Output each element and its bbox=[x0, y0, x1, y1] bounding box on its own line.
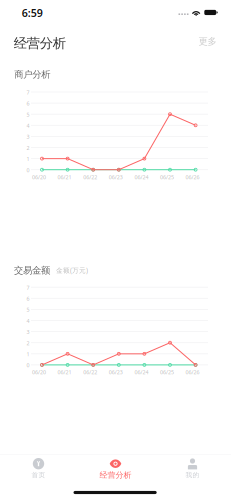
staticText: 首页 bbox=[31, 471, 45, 479]
staticText: 06/24 bbox=[134, 369, 148, 376]
staticText: 6:59 bbox=[22, 6, 43, 20]
staticText: 经营分析 bbox=[14, 35, 66, 52]
staticText: 06/22 bbox=[83, 369, 97, 376]
staticText: 06/20 bbox=[32, 174, 46, 181]
staticText: 2 bbox=[26, 340, 29, 347]
staticText: 6 bbox=[26, 295, 29, 302]
staticText: 06/26 bbox=[186, 174, 200, 181]
staticText: 1 bbox=[26, 351, 29, 358]
staticText: 06/25 bbox=[160, 369, 174, 376]
staticText: 金额(万元) bbox=[56, 266, 88, 275]
staticText: 4 bbox=[26, 317, 29, 324]
staticText: 6 bbox=[26, 100, 29, 107]
staticText: 更多 bbox=[198, 36, 216, 47]
staticText: 4 bbox=[26, 122, 29, 129]
staticText: 0 bbox=[26, 362, 29, 369]
staticText: 0 bbox=[26, 167, 29, 174]
staticText: 06/23 bbox=[109, 369, 123, 376]
staticText: 3 bbox=[26, 328, 29, 336]
staticText: 06/22 bbox=[83, 174, 97, 181]
button[interactable]: 首页 bbox=[0, 455, 77, 499]
button[interactable]: 经营分析 bbox=[77, 455, 154, 499]
staticText: 商户分析 bbox=[14, 69, 50, 80]
staticText: 我的 bbox=[185, 471, 199, 479]
staticText: 3 bbox=[26, 133, 29, 140]
staticText: 06/24 bbox=[134, 174, 148, 181]
staticText: 1 bbox=[26, 155, 29, 163]
staticText: 7 bbox=[26, 284, 29, 291]
staticText: 7 bbox=[26, 89, 29, 96]
staticText: 经营分析 bbox=[99, 470, 131, 480]
staticText: 06/21 bbox=[58, 369, 72, 376]
staticText: 06/26 bbox=[186, 369, 200, 376]
staticText: 06/21 bbox=[58, 174, 72, 181]
staticText: 5 bbox=[26, 306, 29, 313]
staticText: 06/23 bbox=[109, 174, 123, 181]
button[interactable]: 我的 bbox=[154, 455, 231, 499]
staticText: 06/25 bbox=[160, 174, 174, 181]
button[interactable]: 更多 bbox=[190, 31, 224, 51]
staticText: 5 bbox=[26, 111, 29, 118]
staticText: 06/20 bbox=[32, 369, 46, 376]
staticText: 交易金额 bbox=[14, 265, 50, 276]
staticText: 2 bbox=[26, 144, 29, 151]
